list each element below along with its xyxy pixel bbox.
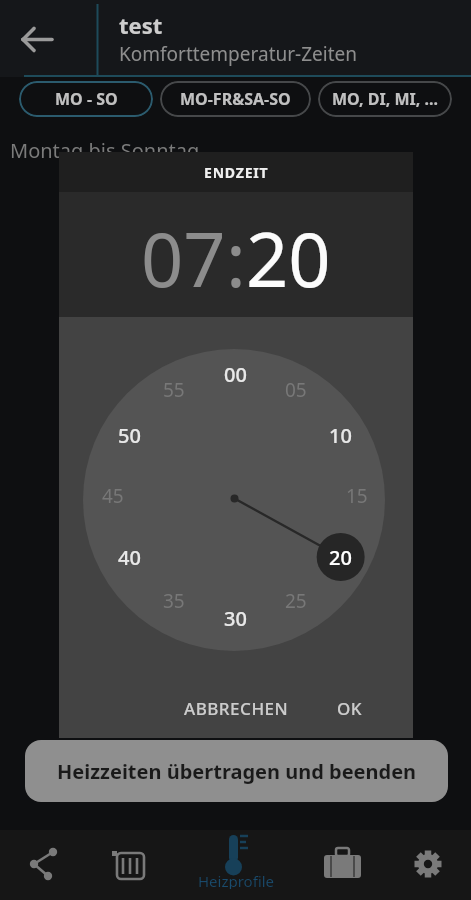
staticText: 05 xyxy=(285,377,307,403)
button[interactable] xyxy=(188,830,282,900)
button[interactable]: 20 xyxy=(246,208,331,309)
button[interactable] xyxy=(0,830,94,900)
button[interactable] xyxy=(94,830,188,900)
button[interactable]: ABBRECHEN xyxy=(166,690,306,726)
staticText: 15 xyxy=(346,483,368,509)
staticText: 45 xyxy=(102,483,124,509)
button[interactable] xyxy=(0,0,97,77)
button[interactable]: Heizzeiten übertragen und beenden xyxy=(25,740,448,802)
staticText: Heizprofile xyxy=(198,871,275,889)
staticText: 20 xyxy=(329,544,352,571)
staticText: 35 xyxy=(163,588,185,614)
button[interactable]: 07 xyxy=(141,208,226,309)
staticText: 55 xyxy=(163,377,185,403)
staticText: 40 xyxy=(118,544,141,571)
button[interactable]: OK xyxy=(320,690,380,726)
button[interactable]: MO, DI, MI, ... xyxy=(318,81,452,117)
staticText: OK xyxy=(337,697,363,720)
staticText: 00 xyxy=(224,361,247,388)
staticText: 30 xyxy=(224,605,247,632)
staticText: Heizzeiten übertragen und beenden xyxy=(57,758,417,785)
staticText: ENDZEIT xyxy=(204,163,269,182)
staticText: Komforttemperatur-Zeiten xyxy=(119,41,357,67)
button[interactable]: MO-FR&SA-SO xyxy=(160,81,311,117)
staticText: MO, DI, MI, ... xyxy=(332,88,439,110)
button[interactable] xyxy=(376,830,470,900)
staticText: : xyxy=(226,208,246,309)
staticText: MO-FR&SA-SO xyxy=(180,88,291,110)
staticText: 10 xyxy=(329,422,352,449)
staticText: MO - SO xyxy=(55,88,118,110)
staticText: 50 xyxy=(118,422,141,449)
button[interactable] xyxy=(282,830,376,900)
staticText: 25 xyxy=(285,588,307,614)
button[interactable]: MO - SO xyxy=(19,81,153,117)
staticText: test xyxy=(119,10,163,40)
staticText: Montag bis Sonntag xyxy=(10,137,200,163)
staticText: ABBRECHEN xyxy=(184,697,289,720)
